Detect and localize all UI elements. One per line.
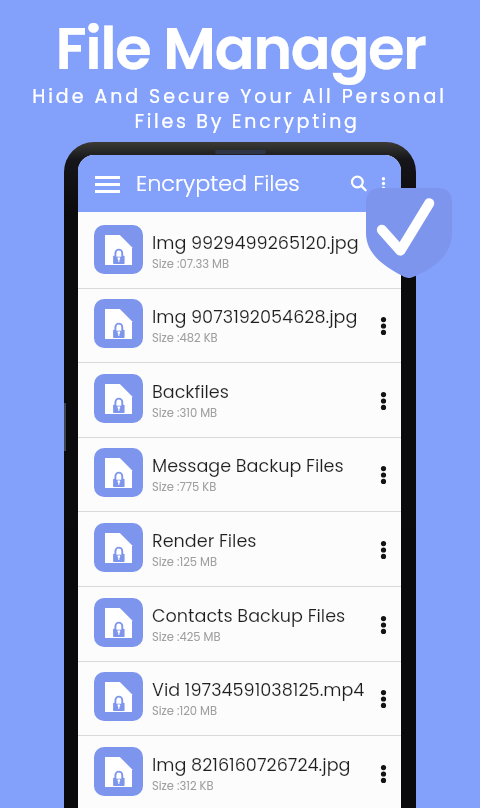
button[interactable]: File options (366, 456, 400, 494)
staticText: Message Backup Files (152, 454, 344, 479)
button[interactable]: Search (340, 164, 377, 203)
button[interactable]: File options (366, 606, 400, 644)
staticText: Size :425 MB (152, 629, 221, 645)
staticText: Size :125 MB (152, 554, 217, 570)
staticText: Contacts Backup Files (152, 604, 346, 629)
staticText: Img 9073192054628.jpg (152, 305, 358, 330)
staticText: Files By Encrypting (134, 108, 360, 135)
staticText: Size :312 KB (152, 778, 214, 794)
button[interactable] (78, 588, 401, 661)
staticText: Size :310 MB (152, 405, 218, 421)
button[interactable] (78, 737, 401, 808)
button[interactable] (78, 662, 401, 735)
button[interactable]: More options (368, 164, 398, 203)
staticText: Encrypted Files (136, 168, 300, 199)
staticText: File Manager (55, 7, 426, 90)
staticText: Size :07.33 MB (152, 256, 229, 272)
staticText: Size :482 KB (152, 330, 218, 346)
button[interactable]: File options (366, 531, 400, 569)
button[interactable]: File options (366, 382, 400, 420)
staticText: Img 8216160726724.jpg (152, 753, 351, 778)
button[interactable]: File options (366, 233, 400, 271)
staticText: Render Files (152, 529, 257, 554)
button[interactable]: File options (366, 307, 400, 345)
staticText: Hide And Secure Your All Personal (32, 83, 447, 110)
button[interactable] (78, 513, 401, 586)
staticText: Vid 19734591038125.mp4 (152, 678, 365, 703)
button[interactable]: File options (366, 755, 400, 793)
button[interactable] (78, 215, 401, 288)
staticText: Img 9929499265120.jpg (152, 231, 359, 256)
staticText: Size :120 MB (152, 703, 217, 719)
button[interactable]: Open navigation menu (84, 165, 131, 204)
button[interactable] (78, 364, 401, 437)
staticText: Backfiles (152, 380, 229, 405)
button[interactable] (78, 438, 401, 511)
staticText: Size :775 KB (152, 479, 217, 495)
button[interactable]: File options (366, 680, 400, 718)
button[interactable] (78, 289, 401, 362)
